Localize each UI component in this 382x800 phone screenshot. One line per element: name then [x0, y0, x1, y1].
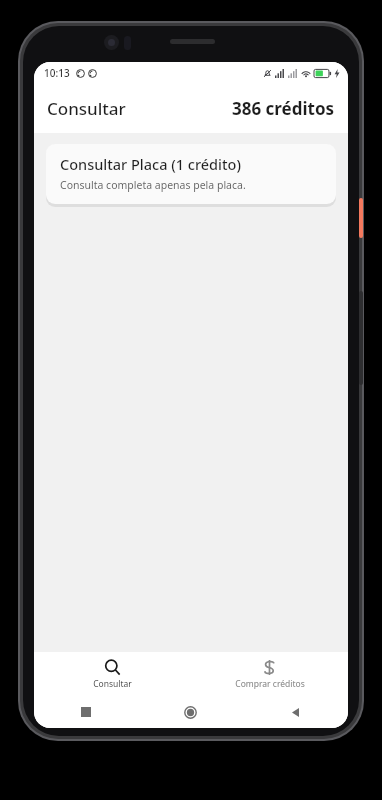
button[interactable]: Consultar Placa (1 crédito): [46, 144, 336, 204]
staticText: Consultar: [93, 678, 132, 690]
staticText: Consultar: [47, 97, 126, 120]
staticText: Comprar créditos: [235, 678, 305, 690]
staticText: 10:13: [44, 66, 70, 80]
button[interactable]: Recent apps: [34, 707, 138, 717]
staticText: Consultar Placa (1 crédito): [60, 154, 241, 174]
button[interactable]: Consultar: [34, 655, 191, 694]
button[interactable]: Back: [243, 707, 348, 718]
button[interactable]: Comprar créditos: [191, 655, 348, 694]
button[interactable]: Home: [138, 706, 243, 719]
staticText: Consulta completa apenas pela placa.: [60, 178, 246, 192]
staticText: 386 créditos: [232, 97, 335, 120]
